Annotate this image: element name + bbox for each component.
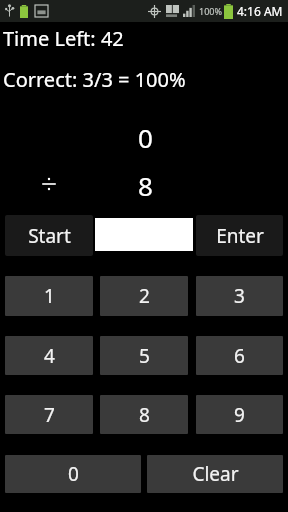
staticText: 100%: [199, 5, 222, 17]
staticText: 4:16 AM: [237, 3, 283, 19]
button[interactable]: 4: [5, 336, 93, 375]
staticText: 4: [44, 343, 55, 369]
staticText: 7: [44, 402, 55, 428]
staticText: 5: [139, 343, 150, 369]
staticText: 8: [138, 168, 153, 200]
staticText: Time Left: 42: [3, 25, 124, 52]
staticText: 2: [139, 283, 150, 309]
button[interactable]: 9: [196, 395, 283, 434]
button[interactable]: Enter: [196, 215, 283, 256]
staticText: Start: [28, 223, 71, 249]
staticText: 0: [68, 461, 79, 487]
button[interactable]: 7: [5, 395, 93, 434]
staticText: Enter: [216, 223, 264, 249]
staticText: 3: [234, 283, 245, 309]
button[interactable]: Clear: [147, 455, 283, 493]
staticText: 9: [234, 402, 245, 428]
staticText: 8: [139, 402, 150, 428]
button[interactable]: 1: [5, 276, 93, 316]
staticText: Clear: [192, 461, 239, 487]
button[interactable]: 5: [100, 336, 188, 375]
button[interactable]: 6: [196, 336, 283, 375]
staticText: 6: [234, 343, 245, 369]
staticText: 0: [138, 120, 153, 152]
button[interactable]: 2: [100, 276, 188, 316]
button[interactable]: 8: [100, 395, 188, 434]
staticText: 1: [44, 283, 55, 309]
staticText: Correct: 3/3 = 100%: [3, 66, 186, 93]
button[interactable]: 3: [196, 276, 283, 316]
button[interactable]: 0: [5, 455, 141, 493]
button[interactable]: Start: [5, 215, 93, 256]
